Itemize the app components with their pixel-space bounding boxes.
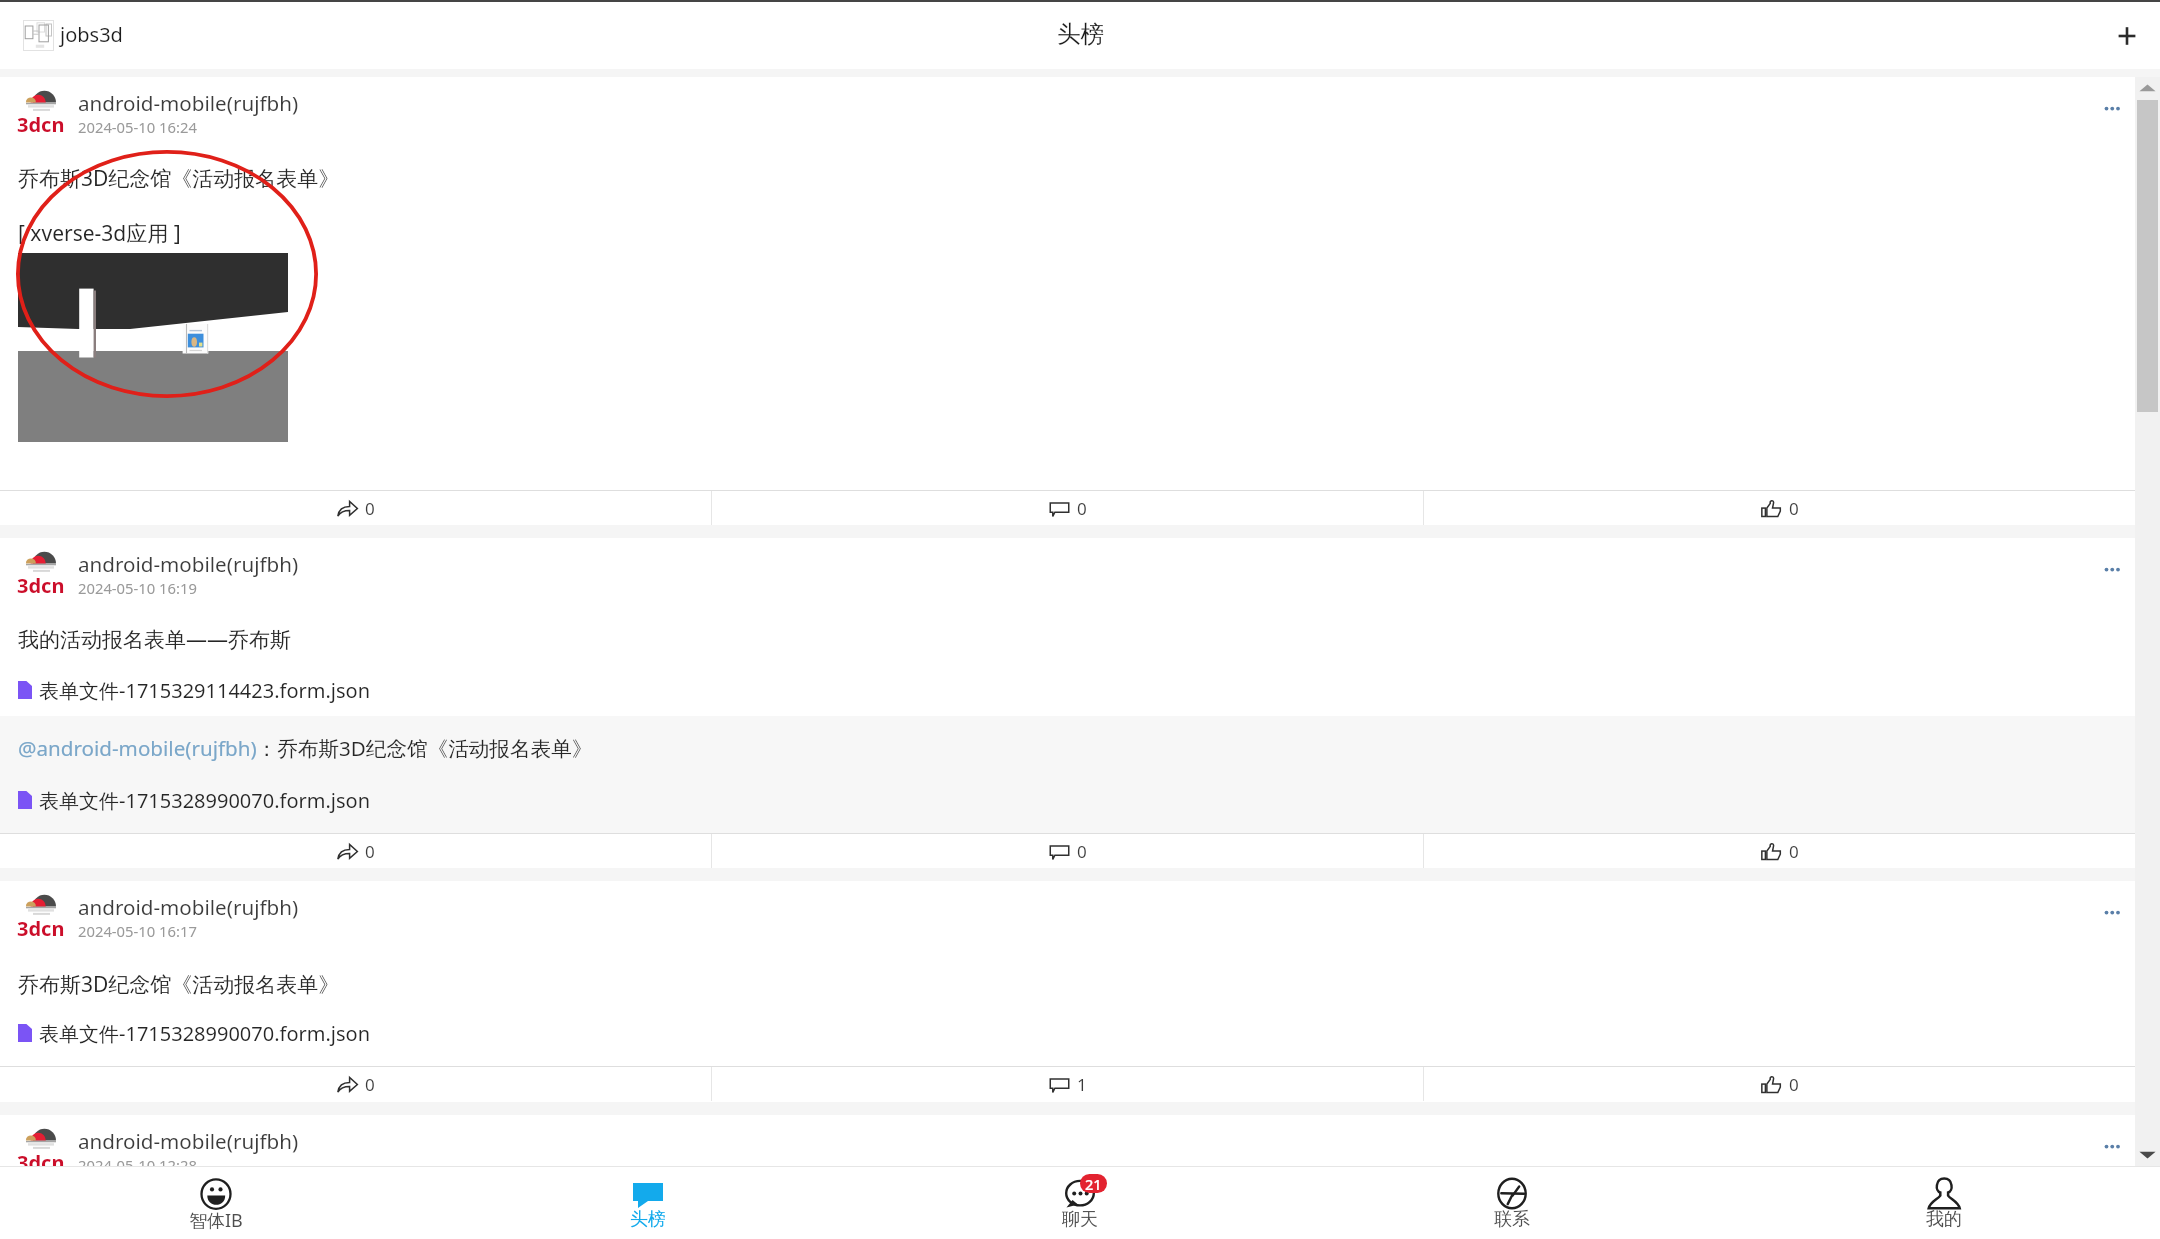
button[interactable]: More options	[2100, 97, 2126, 121]
staticText: 2024-05-10 16:24	[78, 117, 197, 137]
button[interactable]: More options	[2100, 558, 2126, 582]
button[interactable]: Scroll up	[2136, 77, 2159, 100]
staticText: 0	[365, 497, 375, 520]
button[interactable]: Comment	[712, 491, 1423, 525]
staticText: 乔布斯3D纪念馆《活动报名表单》	[18, 970, 340, 999]
button[interactable]: App	[23, 20, 54, 51]
button[interactable]: 表单文件-1715329114423.form.json	[18, 671, 2160, 709]
staticText: 聊天	[1062, 1208, 1098, 1231]
button[interactable]: Share	[0, 1067, 711, 1101]
button[interactable]: More options	[2100, 1135, 2126, 1159]
staticText: 0	[1789, 497, 1799, 520]
staticText: 3dcn	[17, 572, 65, 599]
staticText: 0	[365, 840, 375, 863]
staticText: 联系	[1494, 1208, 1530, 1231]
button[interactable]: Share	[0, 491, 711, 525]
button[interactable]: 我的	[1728, 1167, 2160, 1239]
staticText: 2024-05-10 16:17	[78, 921, 197, 941]
staticText: 表单文件-1715328990070.form.json	[39, 787, 371, 814]
staticText: 0	[1789, 1073, 1799, 1096]
button[interactable]: @android-mobile(rujfbh)：乔布斯3D纪念馆《活动报名表单》	[18, 734, 593, 762]
staticText: 表单文件-1715329114423.form.json	[39, 677, 371, 704]
staticText: android-mobile(rujfbh)	[78, 1127, 299, 1155]
staticText: 3dcn	[17, 111, 65, 138]
button[interactable]: Scroll down	[2136, 1143, 2159, 1166]
staticText: 2024-05-10 12:28	[78, 1155, 197, 1175]
staticText: 1	[1077, 1073, 1087, 1096]
button[interactable]: Add post	[2105, 14, 2149, 58]
button[interactable]: Post 2024-05-10 16:24	[0, 77, 2160, 490]
staticText: android-mobile(rujfbh)	[78, 89, 299, 117]
staticText: 我的活动报名表单——乔布斯	[18, 625, 291, 654]
button[interactable]: Like	[1424, 1067, 2135, 1101]
staticText: 乔布斯3D纪念馆《活动报名表单》	[18, 164, 340, 193]
button[interactable]: 联系	[1296, 1167, 1728, 1239]
button[interactable]: Comment	[712, 1067, 1423, 1101]
staticText: jobs3d	[60, 21, 123, 48]
button[interactable]: 头榜	[432, 1167, 864, 1239]
staticText: 表单文件-1715328990070.form.json	[39, 1020, 371, 1047]
button[interactable]: 智体IB	[0, 1167, 432, 1239]
button[interactable]: 表单文件-1715328990070.form.json	[18, 1014, 2160, 1052]
staticText: 0	[365, 1073, 375, 1096]
button[interactable]: 21	[864, 1167, 1296, 1239]
staticText: 21	[1085, 1174, 1102, 1193]
staticText: 0	[1789, 840, 1799, 863]
staticText: android-mobile(rujfbh)	[78, 550, 299, 578]
button[interactable]: Post 2024-05-10 16:19	[0, 538, 2160, 833]
button[interactable]: Like	[1424, 834, 2135, 868]
staticText: android-mobile(rujfbh)	[78, 893, 299, 921]
staticText: [ xverse-3d应用 ]	[18, 219, 181, 248]
button[interactable]: Comment	[712, 834, 1423, 868]
button[interactable]: Post 2024-05-10 16:17	[0, 881, 2160, 1066]
staticText: 头榜	[630, 1208, 666, 1231]
staticText: 智体IB	[189, 1208, 243, 1233]
button[interactable]: More options	[2100, 901, 2126, 925]
staticText: 0	[1077, 497, 1087, 520]
staticText: 0	[1077, 840, 1087, 863]
staticText: 我的	[1926, 1208, 1962, 1231]
staticText: 3dcn	[17, 1149, 65, 1176]
staticText: 3dcn	[17, 915, 65, 942]
staticText: 2024-05-10 16:19	[78, 578, 197, 598]
button[interactable]: Share	[0, 834, 711, 868]
staticText: 头榜	[1057, 19, 1104, 49]
button[interactable]: 表单文件-1715328990070.form.json	[18, 781, 2160, 819]
button[interactable]: Like	[1424, 491, 2135, 525]
